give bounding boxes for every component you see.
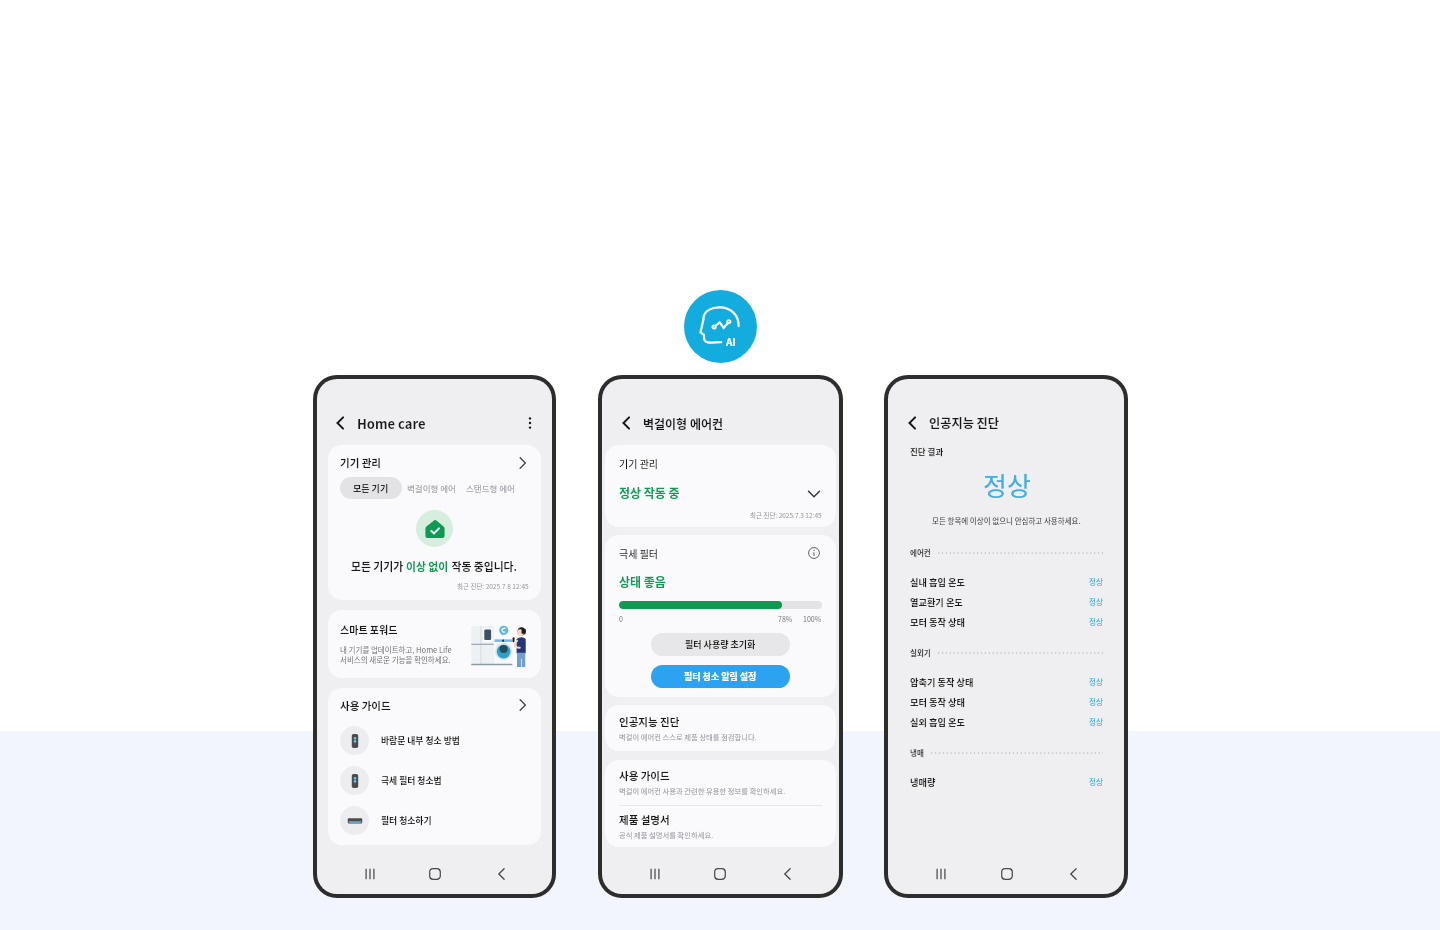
button[interactable]: More options — [519, 412, 541, 434]
staticText: 벽걸이형 에어 — [407, 482, 456, 494]
button[interactable]: 모든 기기 — [340, 477, 402, 499]
staticText: 진단 결과 — [910, 445, 944, 457]
button[interactable]: Back — [901, 412, 923, 434]
other: Home — [999, 866, 1015, 882]
staticText: 공식 제품 설명서를 확인하세요. — [619, 830, 714, 841]
staticText: 모든 기기 — [353, 482, 389, 495]
staticText: 정상 — [1089, 576, 1103, 587]
staticText: 실외 흡입 온도 — [910, 715, 965, 728]
staticText: 상태 좋음 — [619, 573, 666, 590]
staticText: 정상 — [1089, 716, 1103, 727]
button[interactable]: Information — [806, 545, 822, 561]
staticText: 모터 동작 상태 — [910, 695, 965, 708]
staticText: 기기 관리 — [619, 456, 659, 470]
staticText: 정상 — [1089, 776, 1103, 787]
staticText: 제품 설명서 — [619, 812, 670, 827]
staticText: 벽걸이형 에어컨 — [643, 415, 724, 432]
button[interactable]: 모터 동작 상태 — [910, 611, 1103, 631]
staticText: 실외기 — [910, 647, 931, 658]
staticText: 극세 필터 청소법 — [381, 774, 442, 787]
staticText: 스탠드형 에어 — [466, 482, 515, 494]
staticText: 인공지능 진단 — [929, 414, 1000, 432]
staticText: 100% — [803, 614, 822, 624]
button[interactable]: 실외 흡입 온도 — [910, 711, 1103, 731]
other: Back — [903, 414, 921, 432]
staticText: 작동 중입니다. — [449, 558, 518, 574]
staticText: 기기 관리 — [340, 455, 382, 470]
staticText: 필터 사용량 초기화 — [685, 638, 756, 651]
staticText: 이상 없이 — [406, 558, 449, 574]
button[interactable]: 필터 청소하기 — [340, 800, 529, 840]
staticText: 0 — [619, 614, 623, 624]
staticText: 냉매 — [910, 747, 924, 758]
button[interactable]: 냉매량 — [910, 771, 1103, 791]
other: Back — [492, 866, 508, 882]
button[interactable]: 사용 가이드 — [605, 760, 836, 805]
staticText: 필터 청소 알림 설정 — [684, 670, 757, 683]
staticText: 사용 가이드 — [340, 698, 391, 711]
other: Recent apps — [647, 866, 663, 882]
staticText: 정상 — [1089, 596, 1103, 607]
staticText: 모터 동작 상태 — [910, 615, 965, 628]
button[interactable]: 제품 설명서 — [605, 806, 836, 847]
button[interactable]: 모터 동작 상태 — [910, 691, 1103, 711]
staticText: 78% — [778, 614, 793, 624]
other: Home — [712, 866, 728, 882]
staticText: AI — [726, 334, 736, 348]
button[interactable]: 스탠드형 에어 — [461, 477, 520, 499]
button[interactable]: 필터 사용량 초기화 — [651, 633, 790, 656]
staticText: 사용 가이드 — [619, 768, 670, 783]
button[interactable]: 기기 관리 — [328, 445, 541, 600]
other: Recent apps — [933, 866, 949, 882]
staticText: 바람문 내부 청소 방법 — [381, 734, 460, 747]
staticText: Home care — [357, 414, 426, 433]
other: Back — [617, 414, 635, 432]
button[interactable]: 사용 가이드 — [340, 698, 529, 711]
button[interactable]: 기기 관리 — [605, 445, 836, 527]
staticText: 정상 작동 중 — [619, 484, 680, 501]
staticText: 최근 진단: 2025.7.8 12:45 — [457, 581, 529, 590]
staticText: 극세 필터 — [619, 546, 659, 560]
staticText: 최근 진단: 2025.7.3 12:45 — [750, 510, 822, 519]
staticText: 인공지능 진단 — [619, 714, 680, 729]
other: Back — [778, 866, 794, 882]
other: Home — [427, 866, 443, 882]
button[interactable]: 벽걸이형 에어 — [402, 477, 461, 499]
button[interactable]: Back — [329, 412, 351, 434]
staticText: 열교환기 온도 — [910, 595, 963, 608]
staticText: 실내 흡입 온도 — [910, 575, 965, 588]
button[interactable]: 실내 흡입 온도 — [910, 571, 1103, 591]
staticText: 필터 청소하기 — [381, 814, 432, 827]
other: Back — [331, 414, 349, 432]
button[interactable]: 인공지능 진단 — [605, 705, 836, 751]
staticText: 내 기기를 업데이트하고, Home Life 서비스의 새로운 기능을 확인하… — [340, 644, 452, 666]
staticText: 스마트 포워드 — [340, 622, 398, 636]
button[interactable]: 열교환기 온도 — [910, 591, 1103, 611]
other: Recent apps — [362, 866, 378, 882]
other: Back — [1064, 866, 1080, 882]
button[interactable]: Back — [615, 412, 637, 434]
staticText: 정상 — [1089, 676, 1103, 687]
staticText: 냉매량 — [910, 775, 936, 788]
staticText: 벽걸이 에어컨 사용과 관련한 유용한 정보를 확인하세요. — [619, 786, 786, 797]
staticText: 정상 — [1089, 616, 1103, 627]
button[interactable]: 바람문 내부 청소 방법 — [340, 720, 529, 760]
staticText: 모든 항목에 이상이 없으니 안심하고 사용하세요. — [932, 515, 1081, 526]
staticText: 정상 — [1089, 696, 1103, 707]
staticText: 벽걸이 에어컨 스스로 제품 상태를 점검합니다. — [619, 732, 757, 743]
staticText: 정상 — [983, 466, 1031, 498]
staticText: 모든 기기가 — [351, 558, 406, 574]
button[interactable]: 스마트 포워드 — [328, 610, 541, 678]
other: AI — [684, 290, 757, 363]
button[interactable]: 압축기 동작 상태 — [910, 671, 1103, 691]
button[interactable]: 극세 필터 청소법 — [340, 760, 529, 800]
button[interactable]: 필터 청소 알림 설정 — [651, 665, 790, 688]
staticText: 압축기 동작 상태 — [910, 675, 974, 688]
staticText: 에어컨 — [910, 547, 931, 558]
